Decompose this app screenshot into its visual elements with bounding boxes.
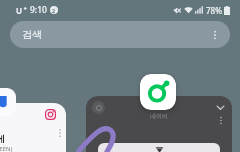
button[interactable]: Expand	[86, 96, 232, 152]
staticText: 검색	[22, 28, 42, 41]
button[interactable]: App shortcut	[0, 88, 16, 116]
staticText: 네이버	[150, 112, 168, 120]
button[interactable]: Expand	[212, 99, 228, 115]
staticText: 78%	[206, 5, 222, 16]
button[interactable]: 검색	[10, 21, 230, 48]
button[interactable]: More options	[206, 26, 224, 44]
button[interactable]	[98, 143, 220, 152]
staticText: 2	[52, 7, 56, 14]
staticText: 9:10	[30, 4, 47, 16]
staticText: TEEN)	[0, 145, 13, 152]
button[interactable]: Naver app icon	[140, 74, 176, 110]
staticText: 에	[0, 133, 5, 144]
button[interactable]: 에	[0, 103, 66, 152]
staticText: U	[16, 5, 23, 16]
